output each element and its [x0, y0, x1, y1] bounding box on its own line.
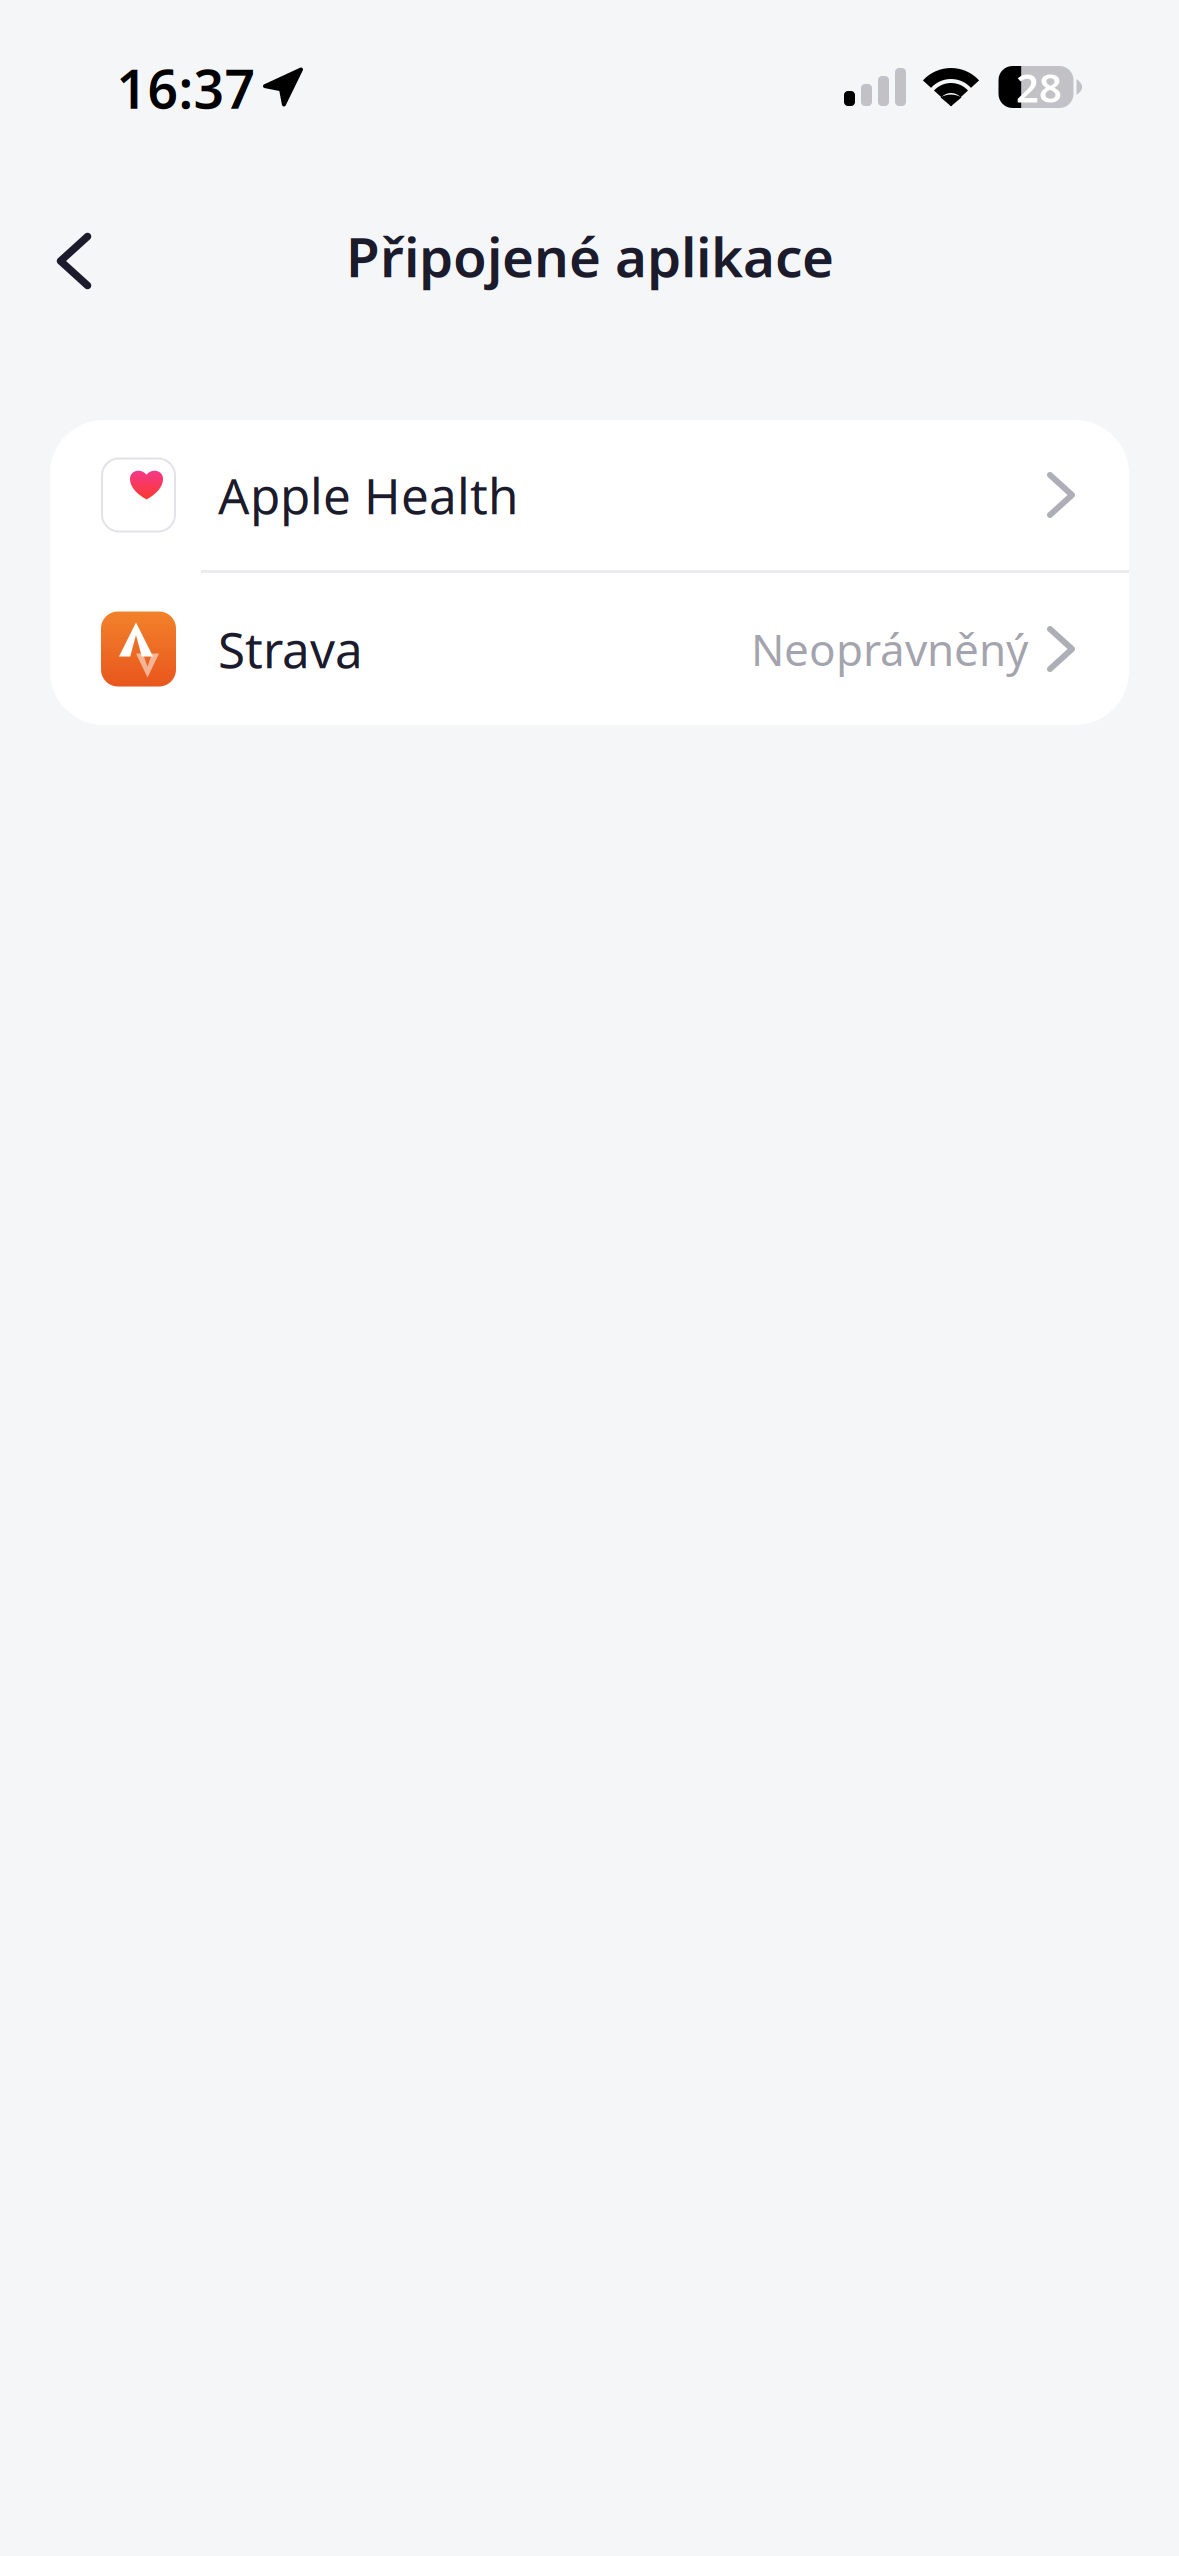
staticText: Připojené aplikace: [346, 220, 834, 292]
button[interactable]: Apple Health: [50, 420, 1129, 570]
button[interactable]: Strava: [50, 573, 1129, 725]
staticText: Apple Health: [218, 462, 518, 528]
staticText: 16:37: [116, 53, 255, 123]
staticText: 28: [1016, 60, 1062, 113]
staticText: Neoprávněný: [751, 620, 1028, 678]
button[interactable]: Back: [19, 206, 129, 316]
staticText: Strava: [218, 616, 363, 682]
